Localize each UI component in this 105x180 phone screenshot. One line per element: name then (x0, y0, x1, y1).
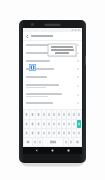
button[interactable]: Key (42, 129, 46, 137)
button[interactable]: Key (64, 138, 68, 146)
button[interactable]: Enter (77, 120, 81, 128)
button[interactable]: Key (36, 129, 41, 137)
button[interactable]: Recents (66, 148, 71, 153)
button[interactable]: Key (36, 110, 41, 119)
button[interactable]: Key (67, 110, 71, 119)
button[interactable]: Key (24, 120, 29, 128)
button[interactable]: Key (36, 120, 41, 128)
button[interactable] (23, 73, 82, 81)
button[interactable]: Key (47, 120, 51, 128)
button[interactable]: Key (24, 129, 29, 137)
button[interactable]: Key (62, 120, 66, 128)
button[interactable]: Key (74, 138, 81, 146)
button[interactable]: Key (30, 120, 35, 128)
button[interactable]: Key (72, 129, 76, 137)
button[interactable]: Key (77, 129, 81, 137)
button[interactable]: Key (57, 129, 61, 137)
other: Back (26, 35, 29, 38)
button[interactable]: Key (33, 138, 37, 146)
button[interactable]: Key (24, 138, 32, 146)
button[interactable] (23, 49, 82, 57)
button[interactable]: Key (67, 120, 71, 128)
button[interactable]: Key (38, 138, 42, 146)
button[interactable]: Key (47, 110, 51, 119)
button[interactable]: Key (72, 110, 76, 119)
button[interactable]: Key (52, 110, 56, 119)
button[interactable]: Back (34, 148, 39, 153)
button[interactable]: Key (30, 129, 35, 137)
button[interactable]: Key (24, 110, 29, 119)
button[interactable]: Key (57, 110, 61, 119)
button[interactable] (23, 90, 82, 99)
button[interactable]: Key (72, 120, 76, 128)
button[interactable]: Key (42, 120, 46, 128)
button[interactable] (23, 81, 82, 90)
button[interactable]: App icon (29, 64, 36, 71)
button[interactable] (23, 57, 82, 65)
button[interactable]: Key (52, 129, 56, 137)
button[interactable]: Back (23, 32, 82, 40)
button[interactable] (23, 99, 82, 107)
button[interactable]: Key (52, 120, 56, 128)
button[interactable] (48, 44, 76, 56)
button[interactable]: Key (43, 138, 63, 146)
button[interactable]: Key (77, 110, 81, 119)
button[interactable]: Home (50, 148, 55, 153)
button[interactable]: Key (57, 120, 61, 128)
button[interactable] (23, 41, 82, 49)
button[interactable]: Key (30, 110, 35, 119)
button[interactable]: Key (42, 110, 46, 119)
button[interactable]: Key (69, 138, 73, 146)
button[interactable]: Key (62, 129, 66, 137)
button[interactable]: Key (67, 129, 71, 137)
button[interactable] (23, 65, 82, 73)
button[interactable]: Key (47, 129, 51, 137)
button[interactable]: Key (62, 110, 66, 119)
